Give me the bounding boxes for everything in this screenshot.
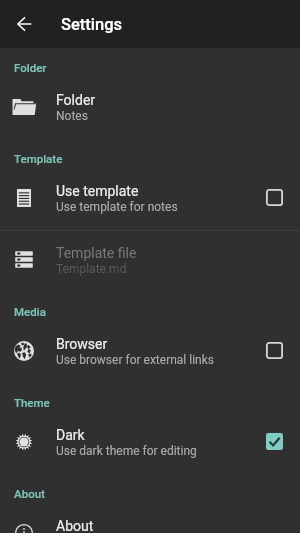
staticText: Notes [56,109,88,123]
staticText: Use template [56,183,139,199]
button[interactable]: Off [246,169,300,230]
staticText: Media [14,305,46,318]
staticText: Template file [56,245,137,261]
staticText: Use template for notes [56,200,178,214]
staticText: Dark [56,427,85,443]
staticText: About [56,518,94,533]
staticText: Template.md [56,262,127,276]
button[interactable]: Use template [0,169,300,230]
staticText: Folder [14,61,47,74]
button[interactable]: Browser [0,322,300,383]
staticText: Template [14,152,63,165]
button[interactable]: About [0,504,300,533]
button[interactable]: Dark [0,413,300,474]
button[interactable]: Off [246,322,300,383]
staticText: Use dark theme for editing [56,444,197,458]
staticText: Folder [56,92,96,108]
button[interactable]: Template file [0,231,300,292]
staticText: About [14,487,45,500]
button[interactable]: Navigate up [0,0,48,48]
button[interactable]: On [246,413,300,474]
button[interactable]: Folder [0,78,300,139]
staticText: Settings [61,15,123,34]
staticText: Use browser for external links [56,353,214,367]
staticText: Theme [14,396,50,409]
staticText: Browser [56,336,108,352]
